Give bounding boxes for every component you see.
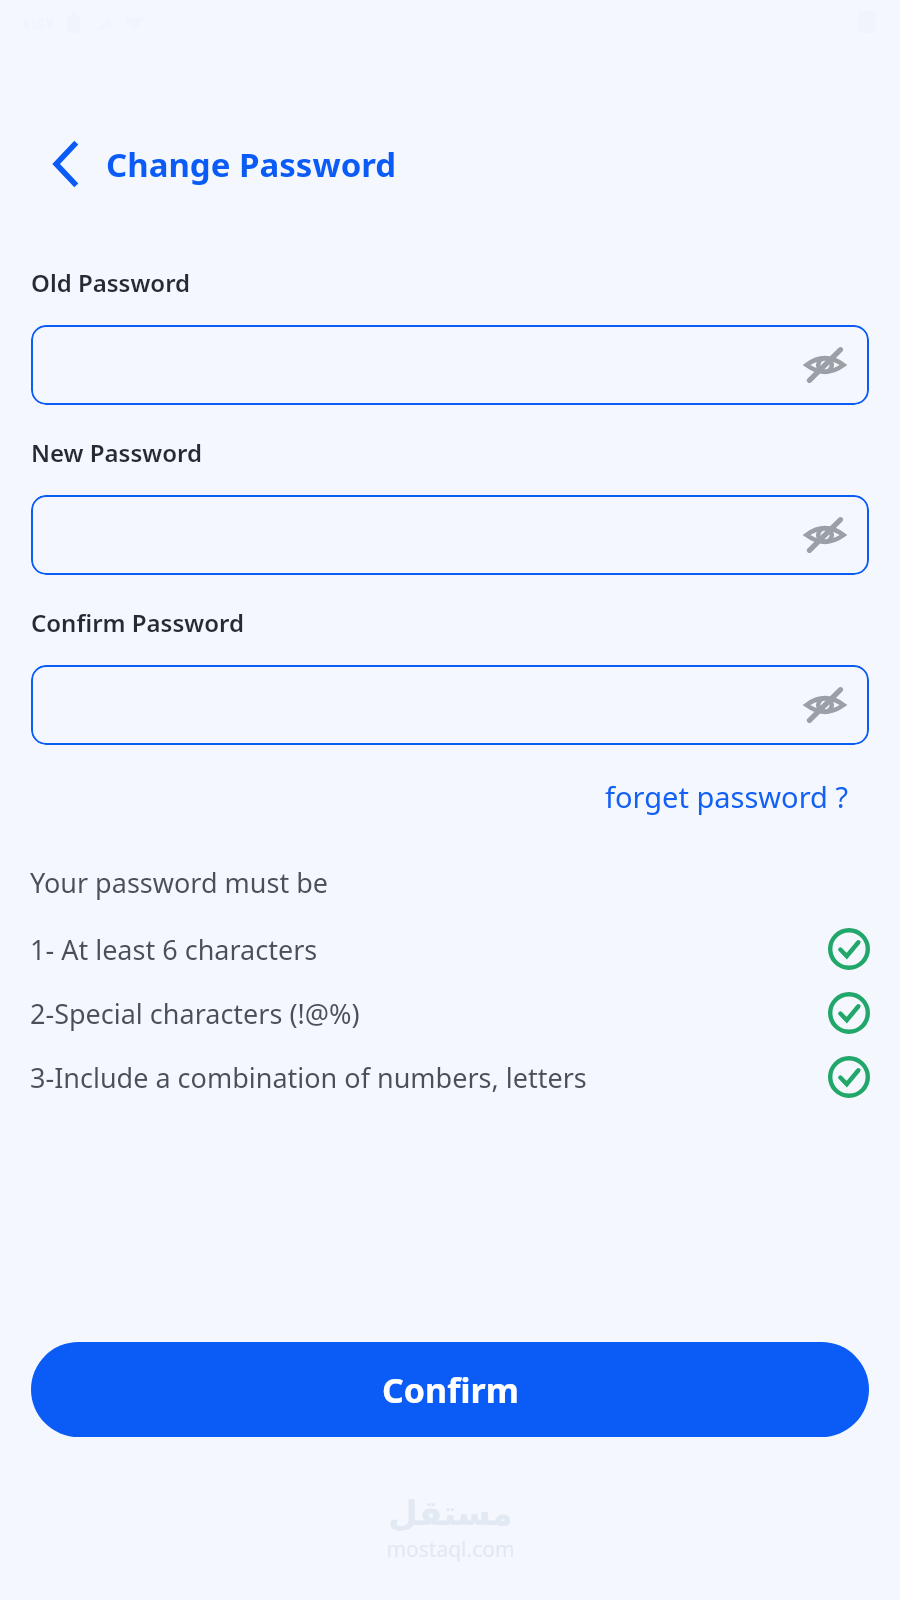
button[interactable]: Toggle password visibility — [31, 665, 869, 745]
button[interactable]: Toggle password visibility — [31, 495, 869, 575]
staticText: New Password — [31, 436, 202, 469]
staticText: Confirm Password — [31, 606, 244, 639]
staticText: Confirm — [382, 1367, 519, 1413]
button[interactable]: Toggle password visibility — [802, 342, 848, 388]
staticText: forget password ? — [605, 777, 848, 816]
staticText: mostaql.com — [386, 1535, 515, 1564]
staticText: Your password must be — [30, 864, 328, 901]
staticText: 1- At least 6 characters — [30, 931, 828, 968]
button[interactable]: forget password ? — [601, 773, 852, 820]
staticText: 2-Special characters (!@%) — [30, 995, 828, 1032]
button[interactable]: Toggle password visibility — [31, 325, 869, 405]
staticText: 3-Include a combination of numbers, lett… — [30, 1059, 828, 1096]
staticText: Old Password — [31, 266, 191, 299]
staticText: Change Password — [106, 142, 397, 187]
button[interactable]: Confirm — [31, 1342, 869, 1437]
button[interactable]: Toggle password visibility — [802, 682, 848, 728]
button[interactable]: Back — [42, 140, 90, 188]
button[interactable]: Toggle password visibility — [802, 512, 848, 558]
staticText: مستقل — [388, 1493, 513, 1533]
